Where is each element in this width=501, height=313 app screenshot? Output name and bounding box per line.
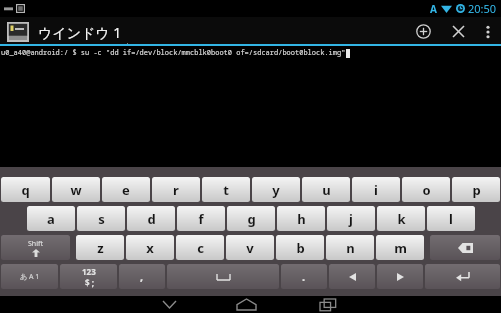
button[interactable]: n (326, 235, 374, 260)
staticText: o (422, 181, 431, 199)
button[interactable]: a (27, 206, 75, 231)
staticText: d (147, 210, 156, 228)
staticText: ウインドウ 1 (38, 23, 122, 42)
button[interactable]: e (102, 177, 150, 202)
button[interactable]: Shift (1, 235, 70, 260)
button[interactable]: p (452, 177, 500, 202)
button[interactable]: w (52, 177, 100, 202)
button[interactable]: Period (281, 264, 327, 289)
staticText: y (272, 181, 280, 199)
button[interactable]: Recent apps (287, 296, 369, 313)
button[interactable]: m (376, 235, 424, 260)
button[interactable]: g (227, 206, 275, 231)
staticText: A (430, 2, 437, 16)
staticText: , (140, 269, 144, 284)
staticText: b (296, 239, 305, 257)
staticText: あ A 1 (20, 272, 40, 282)
button[interactable]: r (152, 177, 200, 202)
button[interactable]: Move cursor left (329, 264, 375, 289)
staticText: l (449, 210, 453, 228)
staticText: p (472, 181, 481, 199)
button[interactable]: l (427, 206, 475, 231)
button[interactable]: Comma (119, 264, 165, 289)
staticText: q (21, 181, 30, 199)
staticText: w (70, 181, 82, 199)
button[interactable]: New window (405, 17, 441, 46)
button[interactable]: More options (475, 17, 501, 46)
button[interactable]: x (126, 235, 174, 260)
staticText: c (197, 239, 204, 257)
button[interactable]: Enter (425, 264, 500, 289)
staticText: a (47, 210, 55, 228)
staticText: 123 (82, 266, 96, 277)
button[interactable]: d (127, 206, 175, 231)
button[interactable]: s (77, 206, 125, 231)
button[interactable]: j (327, 206, 375, 231)
button[interactable]: i (352, 177, 400, 202)
staticText: i (374, 181, 378, 199)
staticText: s (98, 210, 105, 228)
button[interactable]: Close window (441, 17, 475, 46)
button[interactable]: y (252, 177, 300, 202)
button[interactable]: z (76, 235, 124, 260)
staticText: u (322, 181, 331, 199)
staticText: $ ; (85, 277, 94, 288)
staticText: u0_a40@android:/ $ su -c "dd if=/dev/blo… (1, 48, 346, 58)
staticText: e (122, 181, 130, 199)
button[interactable]: Home (205, 296, 287, 313)
button[interactable]: c (176, 235, 224, 260)
button[interactable]: Symbols (60, 264, 117, 289)
staticText: 20:50 (468, 1, 497, 16)
button[interactable]: u (302, 177, 350, 202)
staticText: j (349, 210, 353, 228)
staticText: m (394, 239, 407, 257)
button[interactable]: f (177, 206, 225, 231)
button[interactable]: b (276, 235, 324, 260)
button[interactable]: q (1, 177, 50, 202)
button[interactable]: Backspace (430, 235, 500, 260)
button[interactable]: Switch input language (1, 264, 58, 289)
button[interactable]: Move cursor right (377, 264, 423, 289)
button[interactable]: v (226, 235, 274, 260)
staticText: f (198, 210, 204, 228)
staticText: x (146, 239, 154, 257)
staticText: g (247, 210, 256, 228)
button[interactable]: t (202, 177, 250, 202)
staticText: v (246, 239, 254, 257)
button[interactable]: k (377, 206, 425, 231)
button[interactable]: o (402, 177, 450, 202)
staticText: k (397, 210, 406, 228)
staticText: n (346, 239, 355, 257)
staticText: Shift (28, 239, 43, 249)
staticText: r (173, 181, 179, 199)
button[interactable]: Hide keyboard (133, 296, 205, 313)
staticText: t (223, 181, 229, 199)
button[interactable]: Space (167, 264, 279, 289)
button[interactable]: h (277, 206, 325, 231)
staticText: z (97, 239, 104, 257)
staticText: h (297, 210, 306, 228)
staticText: . (302, 269, 306, 284)
